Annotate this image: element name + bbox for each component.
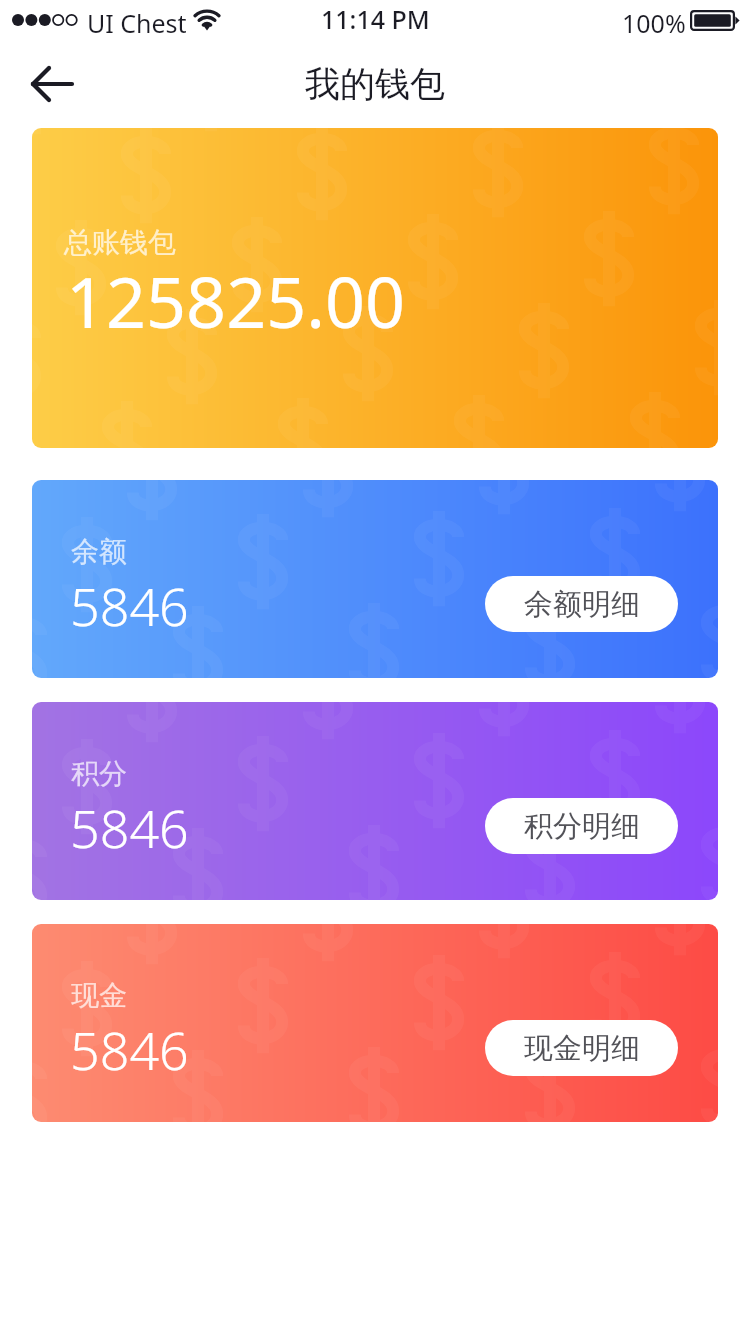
staticText: 积分 (71, 756, 127, 791)
staticText: 积分明细 (524, 808, 640, 845)
button[interactable]: 积分 (32, 702, 718, 900)
staticText: 5846 (70, 792, 189, 863)
staticText: 100% (622, 6, 686, 40)
staticText: 5846 (70, 1014, 189, 1085)
staticText: 5846 (70, 570, 189, 641)
button[interactable]: 现金明细 (485, 1020, 678, 1076)
button[interactable]: 总账钱包 (32, 128, 718, 448)
button[interactable]: 余额明细 (485, 576, 678, 632)
staticText: 现金明细 (524, 1030, 640, 1067)
staticText: 11:14 PM (321, 2, 430, 36)
staticText: 现金 (71, 978, 127, 1013)
staticText: 125825.00 (66, 253, 406, 348)
button[interactable]: 积分明细 (485, 798, 678, 854)
staticText: UI Chest (87, 6, 187, 40)
button[interactable]: Back (14, 48, 86, 120)
button[interactable]: 余额 (32, 480, 718, 678)
staticText: 我的钱包 (305, 62, 445, 106)
button[interactable]: 现金 (32, 924, 718, 1122)
staticText: 余额 (71, 534, 127, 569)
staticText: 余额明细 (524, 586, 640, 623)
staticText: 总账钱包 (64, 225, 176, 260)
